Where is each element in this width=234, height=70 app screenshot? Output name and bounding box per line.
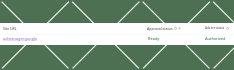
button[interactable]: admanager.google — [3, 36, 38, 41]
staticText: admanager.google — [3, 36, 38, 41]
staticText: Site URL — [3, 26, 17, 31]
other: More information — [174, 27, 177, 30]
button[interactable]: Approval status — [147, 26, 181, 31]
staticText: Ready — [148, 36, 160, 41]
other: Sort — [178, 27, 181, 30]
staticText: Authorized — [205, 36, 226, 41]
button[interactable]: Site URL — [3, 26, 17, 31]
button[interactable]: Ads.txt status — [205, 26, 229, 30]
staticText: Ads.txt status — [205, 26, 225, 30]
other: More information — [226, 27, 229, 30]
staticText: Approval status — [147, 26, 173, 31]
